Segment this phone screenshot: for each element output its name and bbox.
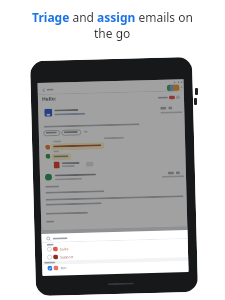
- button[interactable]: [41, 230, 188, 242]
- button[interactable]: Tim: [42, 261, 188, 272]
- button[interactable]: [156, 94, 181, 102]
- button[interactable]: Support: [42, 250, 188, 261]
- staticText: the go: [94, 25, 131, 41]
- staticText: Support: [60, 254, 74, 259]
- button[interactable]: [41, 226, 187, 234]
- button[interactable]: [44, 130, 60, 136]
- staticText: Tim: [60, 265, 67, 270]
- button[interactable]: Sales: [42, 242, 188, 253]
- staticText: Triage and assign emails on: [32, 9, 193, 25]
- button[interactable]: [52, 160, 84, 170]
- button[interactable]: [62, 130, 81, 135]
- staticText: Hello:: [42, 95, 57, 103]
- button[interactable]: [164, 83, 184, 93]
- button[interactable]: [41, 86, 56, 93]
- staticText: Sales: [60, 246, 69, 251]
